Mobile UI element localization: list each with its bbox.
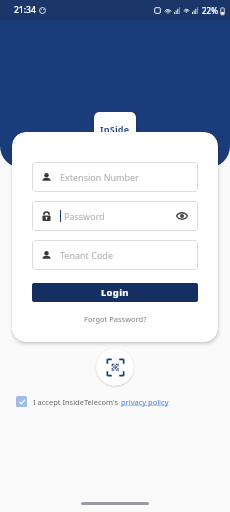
button[interactable]: Extension Number	[32, 162, 198, 192]
staticText: I accept InsideTelecom's	[33, 397, 121, 407]
staticText: InSide	[100, 123, 130, 135]
staticText: privacy policy	[121, 397, 169, 407]
staticText: Login	[101, 286, 129, 299]
button[interactable]: Tenant Code	[32, 240, 198, 270]
staticText: Tenant Code	[60, 249, 113, 261]
button[interactable]: Forgot Password?	[78, 312, 153, 326]
button[interactable]: Show password	[175, 209, 189, 223]
button[interactable]: Login	[32, 283, 198, 302]
button[interactable]: Scan QR code	[96, 348, 134, 386]
button[interactable]: I accept InsideTelecom's	[14, 394, 171, 409]
button[interactable]: Password	[32, 201, 198, 231]
staticText: 22%	[202, 5, 218, 16]
staticText: Forgot Password?	[84, 314, 147, 324]
staticText: Extension Number	[60, 171, 139, 183]
staticText: Password	[64, 210, 105, 222]
staticText: 21:34	[14, 4, 36, 16]
